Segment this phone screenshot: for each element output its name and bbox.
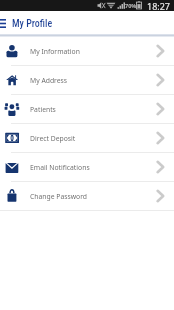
staticText: Patients: [30, 105, 56, 114]
staticText: Email Notifications: [30, 163, 90, 172]
staticText: Change Password: [30, 192, 88, 201]
button[interactable]: Change Password: [0, 182, 174, 210]
staticText: My Address: [30, 76, 68, 85]
staticText: 70%: [125, 2, 137, 9]
staticText: 18:27: [147, 0, 171, 11]
button[interactable]: Email Notifications: [0, 153, 174, 181]
button[interactable]: Direct Deposit: [0, 124, 174, 152]
button[interactable]: Open navigation menu: [0, 11, 12, 34]
staticText: Direct Deposit: [30, 134, 76, 143]
button[interactable]: My Information: [0, 37, 174, 65]
staticText: My Profile: [12, 18, 53, 30]
button[interactable]: My Address: [0, 66, 174, 94]
staticText: My Information: [30, 47, 80, 56]
button[interactable]: Patients: [0, 95, 174, 123]
